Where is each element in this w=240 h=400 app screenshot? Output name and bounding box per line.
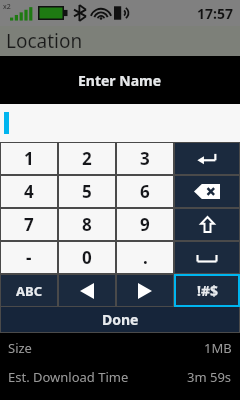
button[interactable]: Space bbox=[175, 242, 239, 273]
staticText: 7 bbox=[24, 213, 34, 236]
staticText: 1MB bbox=[204, 339, 232, 357]
staticText: 1 bbox=[24, 147, 34, 170]
staticText: 3 bbox=[140, 147, 150, 170]
staticText: 17:57 bbox=[197, 4, 233, 23]
staticText: 9 bbox=[140, 213, 150, 236]
button[interactable]: 8 bbox=[59, 209, 115, 240]
button[interactable]: Backspace bbox=[175, 176, 239, 207]
staticText: Done bbox=[102, 310, 139, 329]
button[interactable]: ABC bbox=[1, 275, 57, 306]
button[interactable]: 0 bbox=[59, 242, 115, 273]
button[interactable]: 3 bbox=[117, 143, 173, 174]
staticText: 0 bbox=[82, 246, 92, 269]
staticText: - bbox=[26, 246, 32, 269]
button[interactable]: 5 bbox=[59, 176, 115, 207]
staticText: Est. Download Time bbox=[8, 368, 129, 386]
button[interactable]: 1 bbox=[1, 143, 57, 174]
staticText: 8 bbox=[82, 213, 92, 236]
staticText: 3m 59s bbox=[187, 368, 232, 386]
button[interactable]: Size bbox=[0, 333, 240, 362]
staticText: 4 bbox=[24, 180, 34, 203]
button[interactable]: 7 bbox=[1, 209, 57, 240]
button[interactable]: Done bbox=[1, 307, 239, 332]
staticText: 6 bbox=[140, 180, 150, 203]
button[interactable]: !#$ bbox=[174, 274, 240, 307]
button[interactable] bbox=[0, 104, 240, 142]
staticText: Size bbox=[8, 339, 32, 357]
button[interactable]: Enter bbox=[175, 143, 239, 174]
button[interactable]: . bbox=[117, 242, 173, 273]
button[interactable]: Shift bbox=[175, 209, 239, 240]
staticText: 5 bbox=[82, 180, 92, 203]
button[interactable]: Est. Download Time bbox=[0, 362, 240, 391]
staticText: . bbox=[143, 246, 148, 269]
button[interactable]: Move cursor right bbox=[117, 275, 173, 306]
button[interactable]: 2 bbox=[59, 143, 115, 174]
staticText: !#$ bbox=[197, 281, 218, 300]
button[interactable]: 9 bbox=[117, 209, 173, 240]
button[interactable]: - bbox=[1, 242, 57, 273]
staticText: 2 bbox=[82, 147, 92, 170]
staticText: x2 bbox=[3, 2, 11, 12]
button[interactable]: 6 bbox=[117, 176, 173, 207]
staticText: Enter Name bbox=[78, 71, 162, 90]
button[interactable]: 4 bbox=[1, 176, 57, 207]
button[interactable]: Move cursor left bbox=[59, 275, 115, 306]
staticText: ABC bbox=[16, 282, 42, 300]
staticText: Location bbox=[6, 28, 83, 54]
